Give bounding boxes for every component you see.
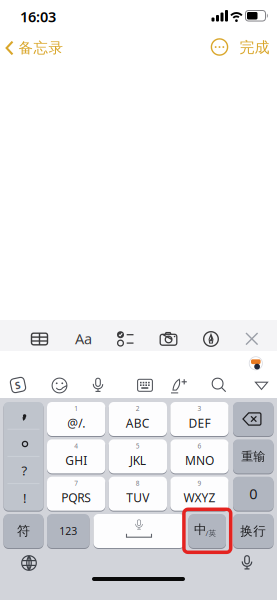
button[interactable]: 拍照: [159, 330, 177, 348]
button[interactable]: 备忘录: [3, 35, 67, 61]
button[interactable]: 表情: [51, 377, 67, 393]
staticText: MNO: [185, 452, 214, 468]
button[interactable]: 8: [109, 477, 167, 512]
button[interactable]: 换行: [233, 514, 273, 549]
staticText: 2: [136, 404, 140, 413]
button[interactable]: 空格: [93, 514, 184, 549]
button[interactable]: 6: [170, 439, 229, 474]
staticText: 换行: [240, 523, 266, 539]
staticText: 5: [136, 441, 140, 450]
button[interactable]: 听写: [240, 555, 254, 571]
staticText: 3: [197, 404, 201, 413]
staticText: 备忘录: [18, 39, 63, 57]
button[interactable]: 完成: [233, 34, 275, 60]
staticText: Aa: [75, 329, 92, 348]
staticText: 6: [197, 441, 201, 450]
staticText: 9: [197, 479, 201, 488]
button[interactable]: 9: [170, 477, 229, 512]
staticText: 16:03: [20, 7, 56, 26]
staticText: GHI: [65, 452, 87, 468]
button[interactable]: 搜狗: [10, 377, 26, 393]
button[interactable]: 关闭: [245, 332, 259, 346]
staticText: TUV: [126, 489, 149, 506]
button[interactable]: 7: [47, 477, 105, 512]
staticText: S: [15, 378, 21, 392]
button[interactable]: 格式: [70, 328, 96, 348]
staticText: /英: [205, 528, 216, 538]
staticText: 4: [74, 441, 78, 450]
staticText: PQRS: [61, 489, 91, 506]
button[interactable]: 收起键盘: [254, 381, 268, 391]
button[interactable]: 搜索: [211, 377, 226, 392]
button[interactable]: 语音: [91, 377, 105, 393]
staticText: 1: [74, 404, 78, 413]
button[interactable]: 符: [3, 514, 43, 549]
staticText: DEF: [188, 415, 210, 431]
button[interactable]: 重输: [233, 439, 273, 474]
button[interactable]: 核对清单: [116, 330, 134, 348]
staticText: 中: [194, 522, 207, 537]
button[interactable]: 4: [47, 439, 105, 474]
staticText: 0: [249, 484, 257, 503]
button[interactable]: 中英文切换: [188, 514, 226, 549]
button[interactable]: 键盘: [137, 377, 153, 393]
staticText: 重输: [241, 449, 265, 464]
staticText: ?: [21, 462, 27, 479]
button[interactable]: 切换输入法: [21, 555, 37, 571]
button[interactable]: 123: [47, 514, 89, 549]
staticText: !: [23, 489, 26, 507]
staticText: WXYZ: [183, 489, 215, 506]
staticText: 123: [59, 524, 77, 538]
staticText: 7: [74, 479, 78, 488]
button[interactable]: 5: [109, 439, 167, 474]
staticText: JKL: [130, 452, 146, 468]
staticText: 8: [136, 479, 140, 488]
staticText: ABC: [126, 415, 150, 431]
button[interactable]: 1: [47, 402, 105, 437]
staticText: 符: [17, 523, 30, 539]
button[interactable]: 智能输入: [170, 376, 188, 394]
staticText: @/.: [67, 415, 85, 431]
button[interactable]: 2: [109, 402, 167, 437]
button[interactable]: 3: [170, 402, 229, 437]
button[interactable]: 表格: [30, 330, 48, 348]
staticText: 完成: [239, 38, 269, 57]
button[interactable]: 标记: [203, 331, 219, 347]
button[interactable]: 删除: [233, 402, 273, 437]
button[interactable]: 0: [233, 477, 273, 512]
button[interactable]: 更多: [207, 35, 231, 59]
